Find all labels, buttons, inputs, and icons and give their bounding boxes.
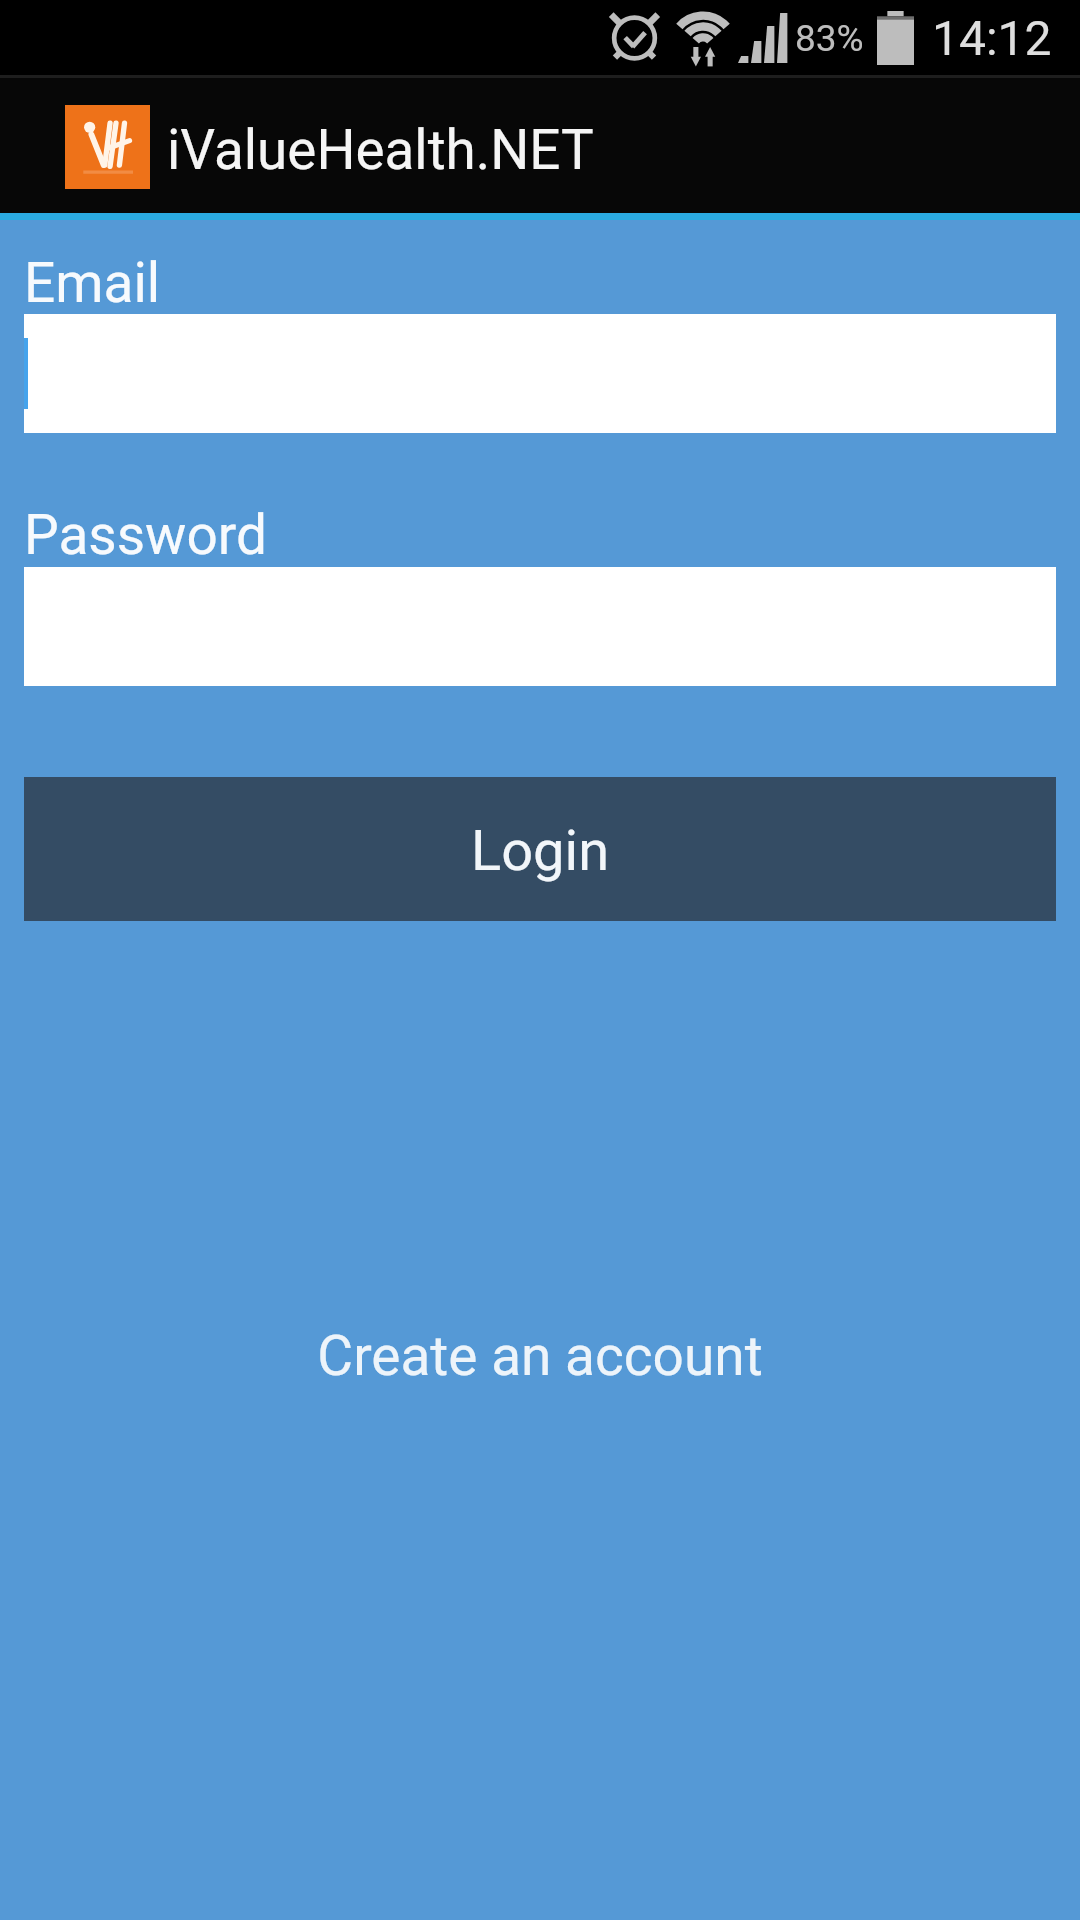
staticText: Create an account: [317, 1324, 763, 1388]
staticText: 14:12: [932, 10, 1052, 66]
staticText: Password: [24, 503, 267, 567]
button[interactable]: Login: [24, 777, 1056, 921]
staticText: Login: [471, 818, 610, 884]
button[interactable]: Email: [24, 314, 1056, 433]
staticText: 83%: [795, 17, 864, 60]
staticText: Email: [24, 251, 161, 315]
button[interactable]: Create an account: [24, 1324, 1056, 1388]
staticText: iValueHealth.NET: [167, 118, 594, 182]
